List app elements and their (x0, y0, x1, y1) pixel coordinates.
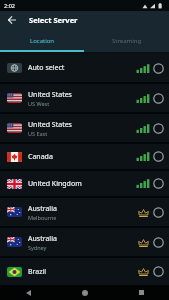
button[interactable]: United States (0, 84, 169, 112)
staticText: United Kingdom (28, 179, 82, 189)
button[interactable]: Brazil (0, 258, 169, 285)
button[interactable]: Location (0, 29, 84, 52)
staticText: Sydney (28, 244, 47, 251)
button[interactable]: Canada (0, 144, 169, 169)
button[interactable] (113, 285, 169, 300)
staticText: United States (28, 120, 72, 130)
staticText: Australia (28, 234, 57, 244)
button[interactable]: United States (0, 114, 169, 142)
staticText: US East (28, 130, 48, 137)
button[interactable]: Australia (0, 228, 169, 256)
button[interactable]: Streaming (84, 29, 169, 52)
staticText: Canada (28, 152, 53, 162)
staticText: Location (30, 37, 55, 45)
staticText: Streaming (112, 37, 142, 45)
button[interactable]: United Kingdom (0, 171, 169, 196)
button[interactable]: Australia (0, 198, 169, 226)
staticText: Brazil (28, 267, 47, 277)
button[interactable] (57, 285, 113, 300)
staticText: Auto select (28, 63, 65, 73)
staticText: Melbourne (28, 214, 57, 221)
staticText: US West (28, 100, 50, 107)
staticText: Select Server (29, 15, 78, 25)
staticText: 2:02 (4, 2, 15, 9)
button[interactable] (0, 11, 23, 29)
staticText: Australia (28, 204, 57, 214)
button[interactable] (0, 285, 57, 300)
button[interactable]: Auto select (0, 54, 169, 82)
staticText: United States (28, 90, 72, 100)
